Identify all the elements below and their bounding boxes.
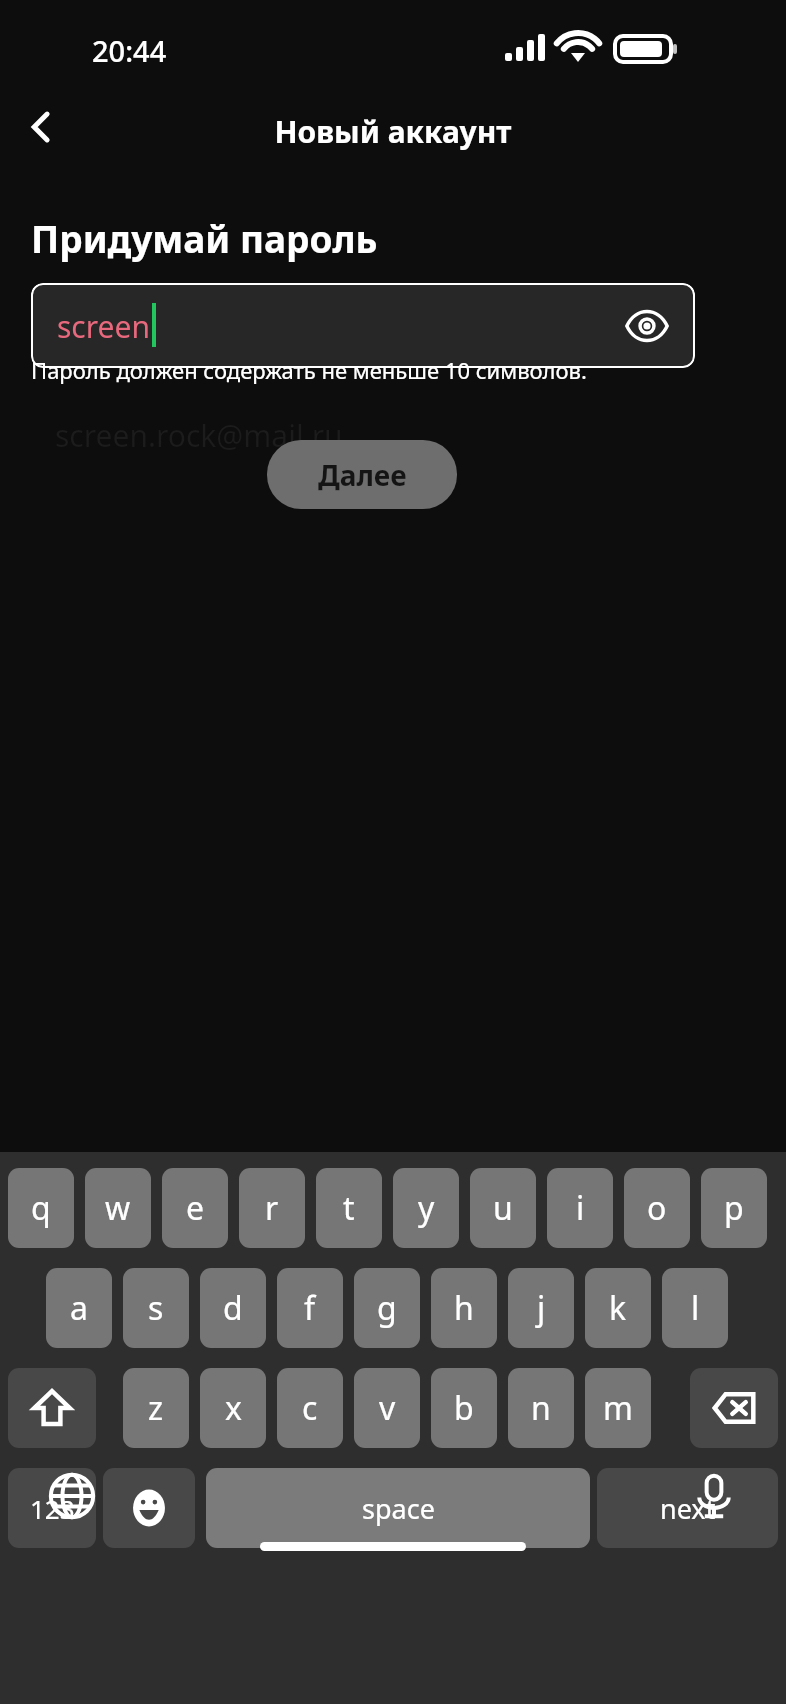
button[interactable]: Назад [10, 96, 72, 158]
staticText: w [105, 1186, 131, 1230]
button[interactable]: s [123, 1268, 189, 1348]
button[interactable]: k [585, 1268, 651, 1348]
button[interactable]: b [431, 1368, 497, 1448]
staticText: r [265, 1186, 279, 1230]
button[interactable]: screen. [31, 283, 695, 368]
staticText: 20:44 [92, 31, 167, 70]
staticText: s [148, 1286, 164, 1330]
staticText: f [304, 1286, 316, 1330]
button[interactable]: v [354, 1368, 420, 1448]
staticText: e [186, 1186, 205, 1230]
staticText: t [343, 1186, 355, 1230]
staticText: screen.rock@mail.ru [55, 415, 343, 456]
button[interactable]: Голосовой ввод [682, 1464, 746, 1528]
staticText: Новый аккаунт [0, 111, 786, 152]
button[interactable]: next [597, 1468, 778, 1548]
staticText: Далее [318, 456, 407, 494]
staticText: x [225, 1386, 242, 1430]
staticText: k [609, 1286, 627, 1330]
staticText: o [647, 1186, 667, 1230]
staticText: b [454, 1386, 474, 1430]
staticText: 123 [30, 1491, 75, 1526]
button[interactable]: space [206, 1468, 590, 1548]
button[interactable]: q [8, 1168, 74, 1248]
staticText: j [537, 1286, 546, 1330]
button[interactable]: o [624, 1168, 690, 1248]
button[interactable]: 123 [8, 1468, 96, 1548]
staticText: space [362, 1490, 435, 1527]
button[interactable]: y [393, 1168, 459, 1248]
button[interactable]: g [354, 1268, 420, 1348]
staticText: q [31, 1186, 51, 1230]
button[interactable]: t [316, 1168, 382, 1248]
button[interactable]: e [162, 1168, 228, 1248]
staticText: c [302, 1386, 318, 1430]
staticText: y [418, 1186, 435, 1230]
button[interactable]: d [200, 1268, 266, 1348]
staticText: h [454, 1286, 474, 1330]
staticText: u [493, 1186, 513, 1230]
button[interactable]: m [585, 1368, 651, 1448]
button[interactable]: i [547, 1168, 613, 1248]
button[interactable]: Эмодзи [103, 1468, 195, 1548]
staticText: a [70, 1286, 88, 1330]
button[interactable]: a [46, 1268, 112, 1348]
staticText: p [724, 1186, 744, 1230]
button[interactable]: Shift [8, 1368, 96, 1448]
button[interactable]: Удалить [690, 1368, 778, 1448]
button[interactable]: u [470, 1168, 536, 1248]
button[interactable]: p [701, 1168, 767, 1248]
staticText: g [377, 1286, 397, 1330]
button[interactable]: x [200, 1368, 266, 1448]
staticText: i [576, 1186, 585, 1230]
button[interactable]: h [431, 1268, 497, 1348]
button[interactable]: f [277, 1268, 343, 1348]
staticText: next [660, 1490, 716, 1527]
button[interactable]: z [123, 1368, 189, 1448]
button[interactable]: j [508, 1268, 574, 1348]
staticText: v [379, 1386, 396, 1430]
button[interactable]: n [508, 1368, 574, 1448]
button[interactable]: Сменить язык [40, 1464, 104, 1528]
button[interactable]: c [277, 1368, 343, 1448]
staticText: screen. [57, 306, 158, 347]
staticText: d [223, 1286, 243, 1330]
button[interactable]: w [85, 1168, 151, 1248]
button[interactable]: Показать пароль [615, 294, 679, 358]
staticText: Придумай пароль [31, 213, 378, 263]
staticText: z [148, 1386, 164, 1430]
staticText: n [531, 1386, 551, 1430]
staticText: l [691, 1286, 700, 1330]
button[interactable]: l [662, 1268, 728, 1348]
staticText: m [603, 1386, 633, 1430]
staticText: Пароль должен содержать не меньше 10 сим… [31, 355, 587, 385]
button[interactable]: r [239, 1168, 305, 1248]
button[interactable]: Далее [267, 440, 457, 509]
